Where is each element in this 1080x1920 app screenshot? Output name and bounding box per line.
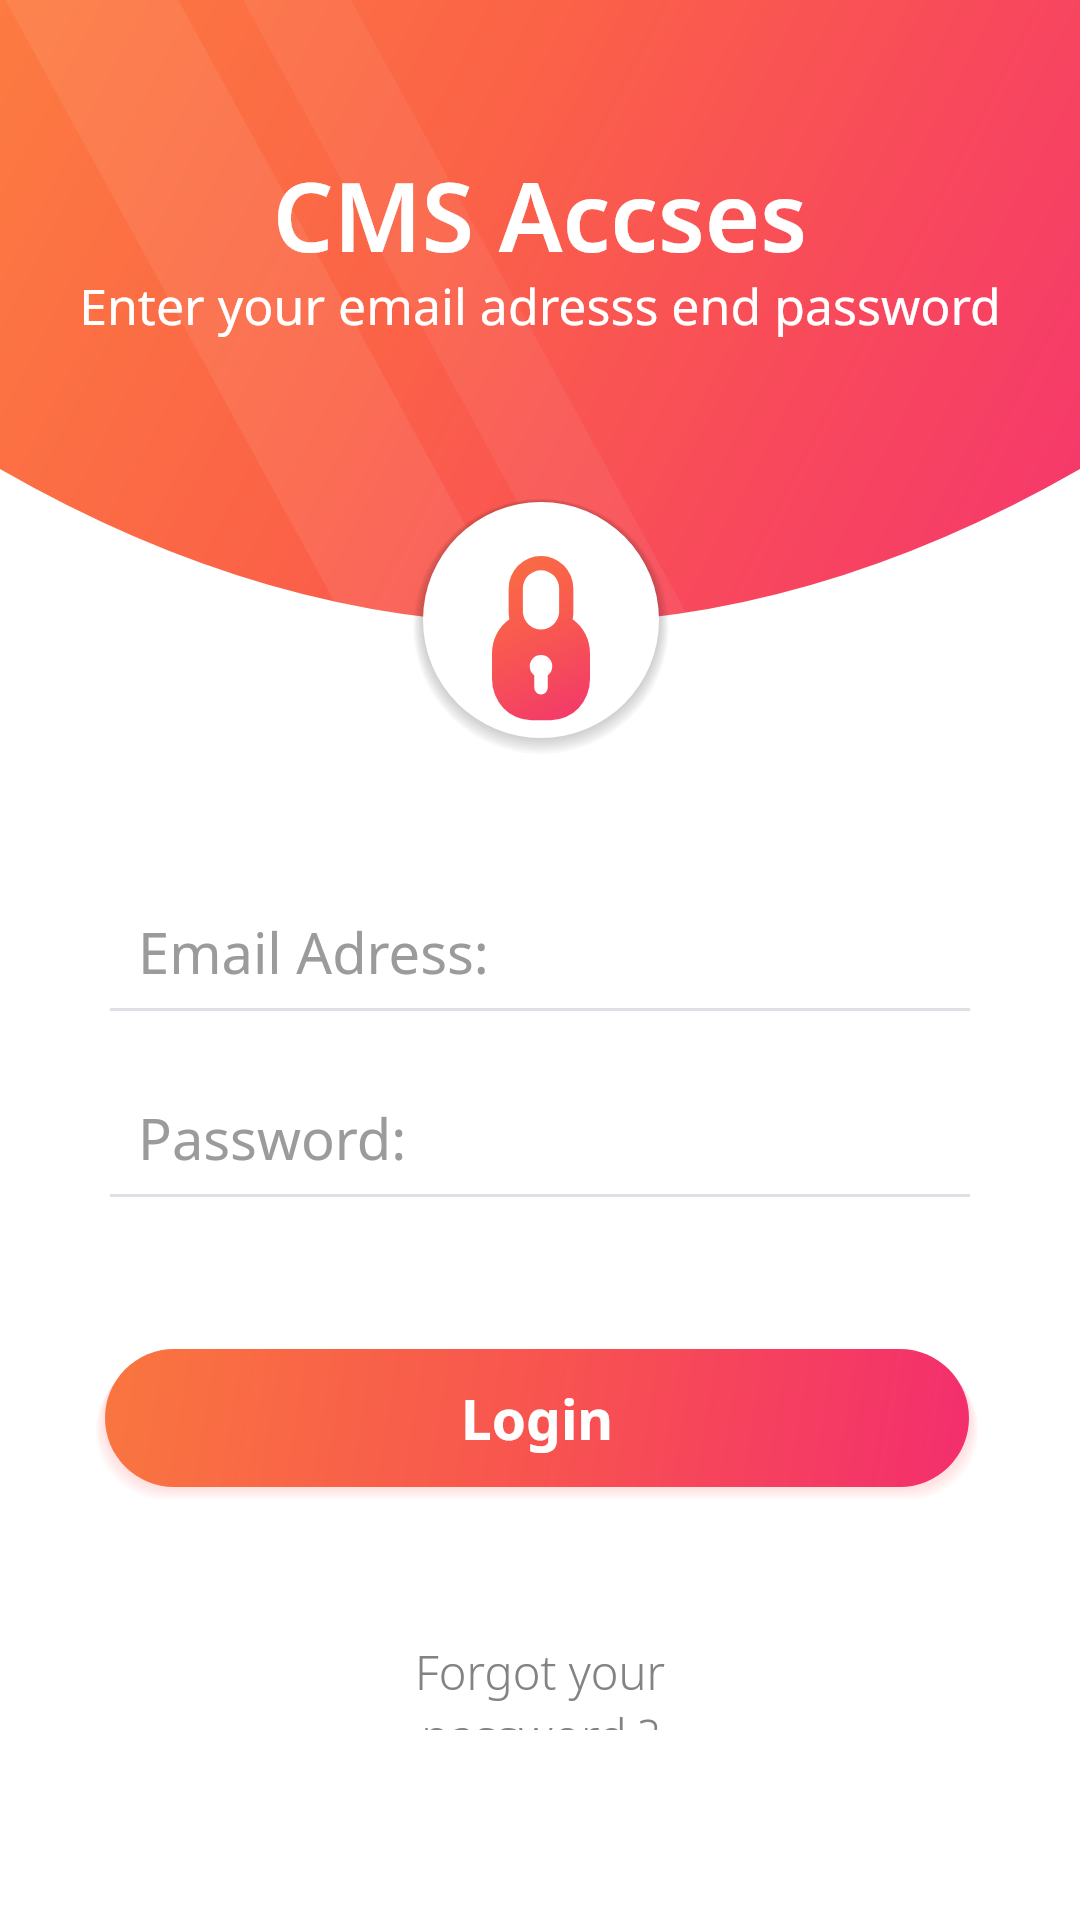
staticText: Password: bbox=[138, 1100, 407, 1176]
button[interactable]: Forgot your password ? bbox=[300, 1640, 780, 1730]
staticText: CMS Accses bbox=[0, 150, 1080, 279]
other: Secure login bbox=[421, 500, 661, 740]
staticText: Email Adress: bbox=[138, 914, 489, 990]
button[interactable]: Login bbox=[105, 1349, 969, 1487]
staticText: Forgot your password ? bbox=[300, 1640, 780, 1730]
staticText: Enter your email adresss end password bbox=[0, 272, 1080, 340]
button[interactable]: Password: bbox=[110, 1076, 970, 1197]
button[interactable]: Email Adress: bbox=[110, 890, 970, 1011]
staticText: Login bbox=[461, 1381, 614, 1456]
